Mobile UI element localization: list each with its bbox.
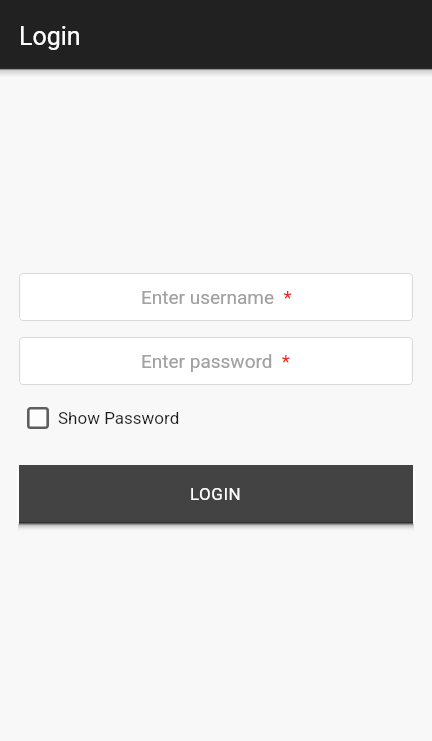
staticText: Show Password — [58, 408, 180, 428]
staticText: Enter password * — [141, 350, 291, 372]
button[interactable]: Show password checkbox — [19, 407, 180, 429]
staticText: LOGIN — [190, 484, 242, 504]
other: Show password checkbox — [27, 407, 49, 429]
staticText: Login — [19, 22, 81, 51]
button[interactable]: LOGIN — [19, 465, 413, 522]
button[interactable]: Enter username * — [19, 273, 413, 321]
staticText: Enter username * — [141, 286, 292, 308]
button[interactable]: Enter password * — [19, 337, 413, 385]
